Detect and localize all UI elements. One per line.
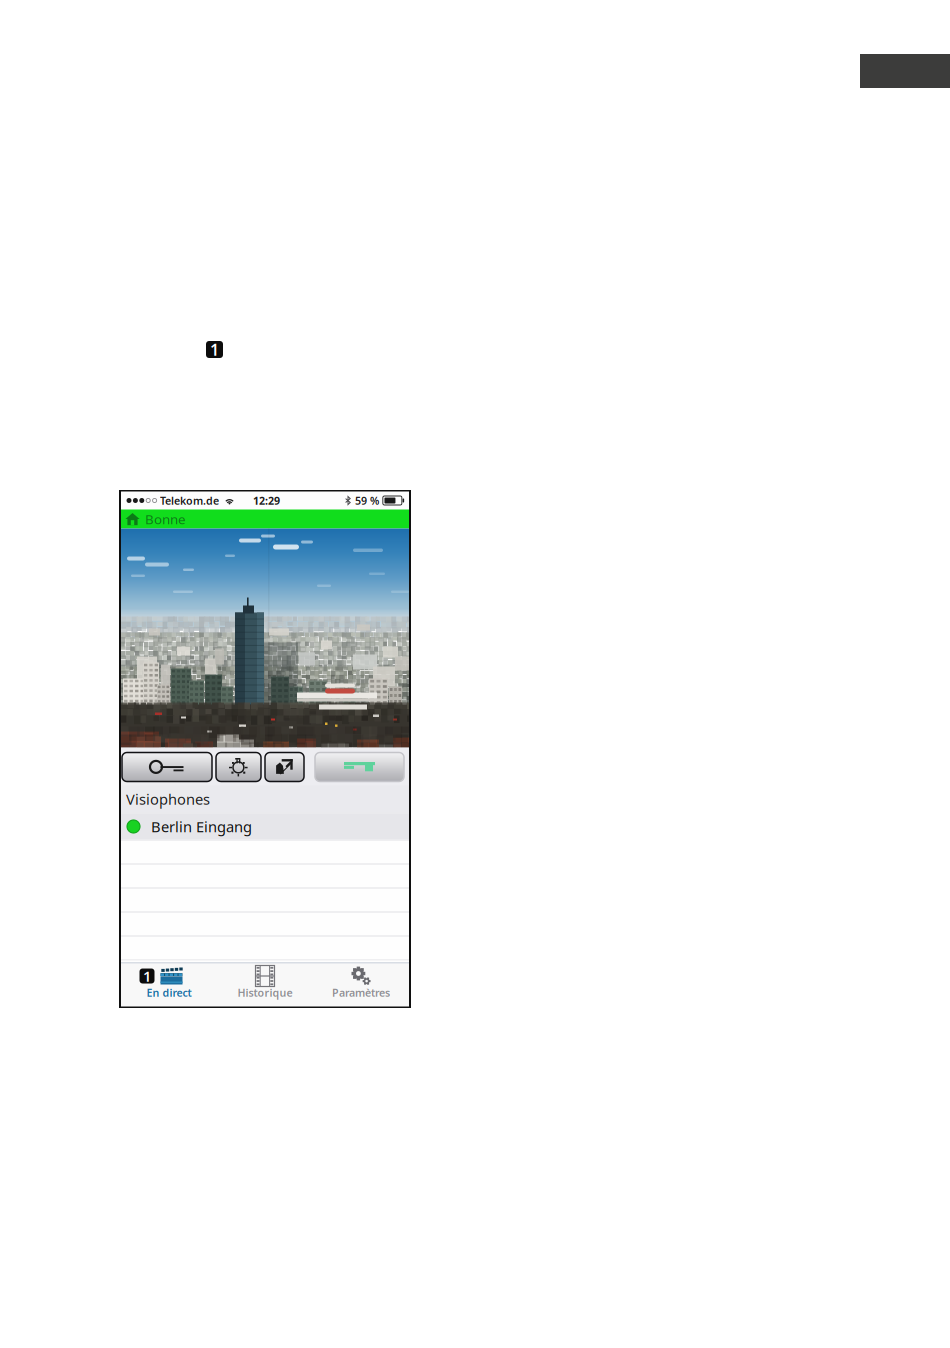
- staticText: Telekom.de: [160, 493, 219, 508]
- button[interactable]: Home: [121, 510, 145, 528]
- button[interactable]: Full screen: [265, 752, 304, 781]
- staticText: 1: [143, 966, 151, 986]
- staticText: 59 %: [355, 493, 379, 508]
- staticText: En direct: [146, 985, 191, 1000]
- button[interactable]: Berlin Eingang: [121, 813, 409, 839]
- staticText: 12:29: [253, 493, 280, 508]
- staticText: 1: [210, 339, 219, 360]
- staticText: Visiophones: [126, 789, 210, 809]
- button[interactable]: 1: [121, 963, 217, 1006]
- button[interactable]: Open door: [122, 752, 212, 781]
- staticText: Berlin Eingang: [151, 817, 252, 836]
- staticText: Bonne: [145, 510, 186, 528]
- button[interactable]: Light: [216, 752, 261, 781]
- button[interactable]: Historique: [217, 963, 313, 1006]
- staticText: Paramètres: [332, 985, 390, 1000]
- staticText: Historique: [237, 985, 292, 1000]
- button[interactable]: Gate: [315, 752, 404, 781]
- button[interactable]: Paramètres: [313, 963, 409, 1006]
